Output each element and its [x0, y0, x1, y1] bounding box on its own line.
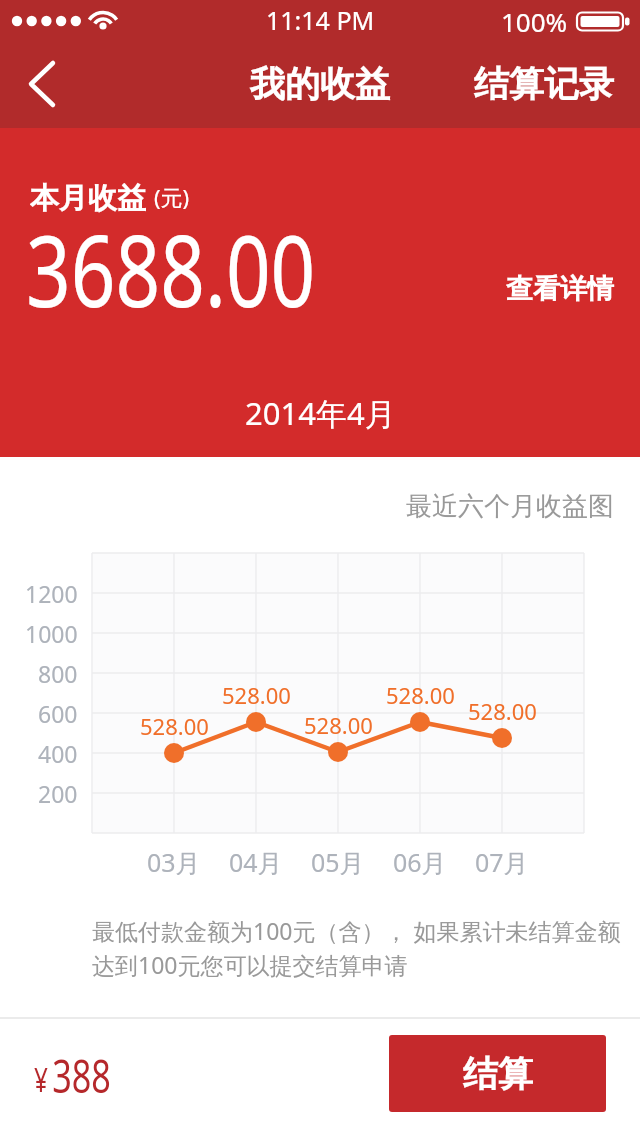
staticText: 本月收益 [30, 180, 146, 214]
staticText: 11:14 PM [266, 3, 375, 37]
staticText: 400 [38, 738, 78, 768]
staticText: 查看详情 [506, 272, 614, 306]
staticText: 1000 [25, 618, 78, 648]
staticText: 最低付款金额为100元（含）， 如果累计未结算金额 [92, 915, 621, 945]
staticText: 2014年4月 [245, 392, 396, 430]
button[interactable]: 结算记录 [454, 62, 614, 106]
staticText: 528.00 [304, 710, 373, 740]
staticText: 800 [38, 658, 78, 688]
staticText: 528.00 [222, 680, 291, 710]
staticText: 3688.00 [26, 202, 316, 334]
staticText: 04月 [229, 845, 283, 875]
button[interactable]: 查看详情 [474, 272, 614, 306]
staticText: 06月 [393, 845, 447, 875]
staticText: 05月 [311, 845, 365, 875]
staticText: 达到100元您可以提交结算申请 [92, 949, 408, 979]
button[interactable] [10, 48, 80, 120]
staticText: 1200 [25, 578, 78, 608]
staticText: 100% [501, 4, 568, 38]
staticText: 528.00 [140, 711, 209, 741]
staticText: 07月 [475, 845, 529, 875]
staticText: 最近六个月收益图 [406, 490, 614, 520]
staticText: 我的收益 [250, 62, 390, 106]
staticText: (元) [154, 182, 190, 212]
staticText: 03月 [147, 845, 201, 875]
button[interactable]: 结算 [389, 1035, 606, 1112]
staticText: 528.00 [468, 696, 537, 726]
staticText: 200 [38, 778, 78, 808]
staticText: 388 [52, 1045, 111, 1106]
staticText: 528.00 [386, 680, 455, 710]
staticText: 结算记录 [474, 62, 614, 106]
staticText: ¥ [34, 1058, 48, 1102]
staticText: 600 [38, 698, 78, 728]
staticText: 结算 [463, 1052, 533, 1096]
